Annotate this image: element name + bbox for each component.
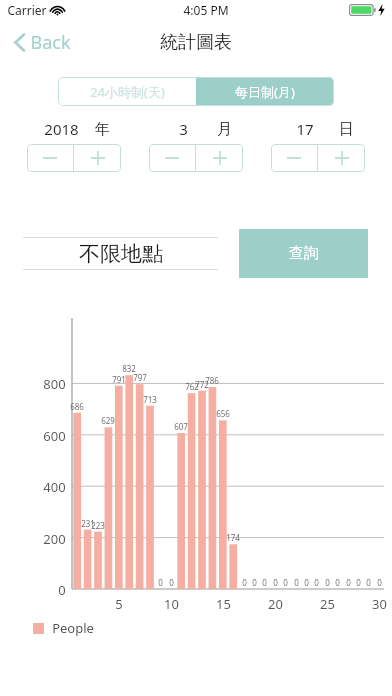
staticText: 600: [43, 427, 66, 445]
button[interactable]: Increase 月: [196, 144, 243, 172]
staticText: 24小時制(天): [90, 83, 165, 101]
staticText: 15: [216, 595, 231, 613]
button[interactable]: Increase 日: [318, 144, 365, 172]
button[interactable]: Decrease 年: [27, 144, 73, 172]
staticText: 231: [81, 518, 95, 529]
button[interactable]: Decrease 日: [271, 144, 317, 172]
staticText: 10: [164, 595, 179, 613]
staticText: 25: [320, 595, 335, 613]
staticText: 年: [95, 120, 110, 139]
staticText: 656: [216, 408, 230, 419]
staticText: 30: [372, 595, 387, 613]
staticText: Back: [30, 30, 71, 55]
staticText: 0: [377, 577, 382, 588]
staticText: Carrier: [7, 2, 47, 18]
staticText: 每日制(月): [235, 83, 295, 101]
button[interactable]: 不限地點: [23, 237, 218, 270]
staticText: 791: [112, 374, 126, 385]
staticText: 0: [304, 577, 309, 588]
staticText: 797: [133, 372, 147, 383]
staticText: 0: [283, 577, 288, 588]
staticText: 0: [366, 577, 371, 588]
staticText: 0: [294, 577, 299, 588]
staticText: 20: [268, 595, 283, 613]
staticText: 日: [339, 120, 354, 139]
staticText: 0: [262, 577, 267, 588]
staticText: 統計圖表: [160, 31, 232, 54]
staticText: 223: [91, 520, 105, 531]
staticText: 713: [143, 394, 157, 405]
button[interactable]: 每日制(月): [196, 77, 334, 106]
staticText: 832: [122, 363, 136, 374]
staticText: 174: [226, 532, 240, 543]
staticText: 400: [43, 478, 66, 496]
button[interactable]: Decrease 月: [149, 144, 195, 172]
staticText: 月: [217, 120, 232, 139]
staticText: 2018: [44, 119, 79, 139]
staticText: 629: [101, 415, 115, 426]
staticText: 0: [314, 577, 319, 588]
staticText: 0: [158, 577, 163, 588]
staticText: 762: [185, 381, 199, 392]
staticText: 686: [70, 401, 84, 412]
staticText: 3: [179, 119, 188, 139]
button[interactable]: Increase 年: [74, 144, 121, 172]
staticText: 0: [356, 577, 361, 588]
staticText: 0: [252, 577, 257, 588]
staticText: 0: [273, 577, 278, 588]
staticText: People: [52, 619, 94, 637]
staticText: 786: [205, 375, 219, 386]
staticText: 772: [195, 379, 209, 390]
staticText: 200: [43, 530, 66, 548]
staticText: 0: [58, 581, 66, 599]
staticText: 0: [325, 577, 330, 588]
button[interactable]: Back: [8, 24, 77, 61]
staticText: 17: [296, 119, 314, 139]
button[interactable]: 24小時制(天): [58, 77, 196, 106]
staticText: 0: [169, 577, 174, 588]
staticText: 0: [346, 577, 351, 588]
staticText: 607: [174, 421, 188, 432]
staticText: 0: [335, 577, 340, 588]
staticText: 4:05 PM: [183, 2, 229, 18]
staticText: 查詢: [289, 244, 319, 263]
staticText: 800: [43, 375, 66, 393]
staticText: 5: [115, 595, 123, 613]
staticText: 不限地點: [79, 241, 163, 267]
staticText: 0: [242, 577, 247, 588]
button[interactable]: 查詢: [239, 229, 368, 278]
